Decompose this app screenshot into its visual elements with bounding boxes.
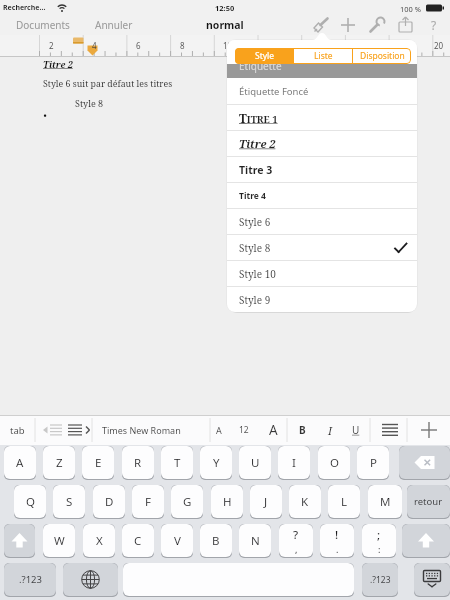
- staticText: O: [330, 455, 339, 471]
- staticText: Documents: [16, 18, 70, 32]
- staticText: 12:50: [215, 3, 235, 13]
- button[interactable]: [414, 563, 450, 596]
- button[interactable]: V: [161, 524, 193, 557]
- staticText: :: [378, 543, 381, 555]
- staticText: G: [183, 494, 192, 510]
- button[interactable]: O: [318, 446, 350, 479]
- button[interactable]: retour: [407, 485, 450, 518]
- button[interactable]: Style 9: [227, 287, 417, 312]
- button[interactable]: I: [278, 446, 310, 479]
- button[interactable]: [402, 524, 450, 557]
- button[interactable]: [407, 415, 450, 445]
- button[interactable]: B: [290, 415, 314, 445]
- staticText: Disposition: [360, 50, 405, 62]
- button[interactable]: Q: [14, 485, 46, 518]
- button[interactable]: [65, 415, 92, 445]
- staticText: Style 9: [239, 293, 271, 307]
- button[interactable]: Disposition: [353, 48, 411, 64]
- staticText: U: [352, 423, 360, 437]
- button[interactable]: [396, 15, 416, 35]
- button[interactable]: Style 10: [227, 261, 417, 286]
- staticText: Style: [255, 50, 275, 62]
- button[interactable]: [338, 15, 358, 35]
- button[interactable]: F: [132, 485, 164, 518]
- staticText: C: [134, 533, 142, 549]
- button[interactable]: B: [200, 524, 232, 557]
- staticText: S: [66, 494, 73, 510]
- staticText: Style 8: [75, 97, 104, 109]
- button[interactable]: Y: [200, 446, 232, 479]
- button[interactable]: A: [210, 415, 228, 445]
- staticText: 6: [136, 40, 141, 51]
- button[interactable]: Style 6: [227, 209, 417, 234]
- staticText: L: [341, 494, 348, 510]
- button[interactable]: Times New Roman: [92, 415, 190, 445]
- button[interactable]: S: [53, 485, 85, 518]
- button[interactable]: E: [82, 446, 114, 479]
- button[interactable]: Titre 4: [227, 183, 417, 208]
- button[interactable]: D: [93, 485, 125, 518]
- button[interactable]: [123, 563, 354, 596]
- staticText: .?123: [370, 574, 391, 586]
- staticText: 20: [434, 40, 444, 51]
- staticText: ,: [295, 543, 298, 555]
- button[interactable]: W: [43, 524, 75, 557]
- button[interactable]: P: [357, 446, 389, 479]
- button[interactable]: Z: [43, 446, 75, 479]
- button[interactable]: X: [83, 524, 115, 557]
- staticText: V: [174, 533, 181, 549]
- button[interactable]: [367, 15, 387, 35]
- staticText: tab: [10, 424, 25, 437]
- button[interactable]: TITRE 1: [227, 105, 417, 130]
- button[interactable]: J: [250, 485, 282, 518]
- button[interactable]: .?123: [4, 563, 56, 596]
- staticText: K: [301, 494, 309, 510]
- button[interactable]: T: [161, 446, 193, 479]
- staticText: Étiquette: [239, 59, 282, 73]
- staticText: Style 6: [239, 215, 271, 229]
- button[interactable]: .?123: [362, 563, 398, 596]
- button[interactable]: A: [4, 446, 36, 479]
- button[interactable]: U: [344, 415, 368, 445]
- button[interactable]: L: [328, 485, 360, 518]
- button[interactable]: ?: [424, 15, 444, 35]
- button[interactable]: tab: [0, 415, 35, 445]
- button[interactable]: H: [211, 485, 243, 518]
- button[interactable]: ?: [279, 524, 313, 557]
- button[interactable]: U: [239, 446, 271, 479]
- button[interactable]: M: [368, 485, 402, 518]
- button[interactable]: [38, 415, 65, 445]
- button[interactable]: C: [122, 524, 154, 557]
- staticText: I: [328, 423, 333, 438]
- button[interactable]: Étiquette Foncé: [227, 78, 417, 104]
- button[interactable]: [312, 15, 332, 35]
- button[interactable]: G: [171, 485, 203, 518]
- button[interactable]: I: [318, 415, 342, 445]
- button[interactable]: Style: [235, 48, 294, 64]
- button[interactable]: Liste: [294, 48, 352, 64]
- staticText: Y: [213, 455, 220, 471]
- button[interactable]: [370, 415, 407, 445]
- button[interactable]: A: [260, 415, 287, 445]
- staticText: 10: [223, 40, 233, 51]
- staticText: A: [269, 421, 278, 439]
- staticText: ?: [431, 17, 437, 33]
- staticText: W: [54, 533, 65, 549]
- button[interactable]: ;: [362, 524, 396, 557]
- button[interactable]: [399, 446, 450, 479]
- button[interactable]: Annuler: [95, 15, 145, 35]
- staticText: B: [299, 423, 306, 437]
- staticText: I: [292, 455, 296, 471]
- button[interactable]: R: [122, 446, 154, 479]
- button[interactable]: N: [239, 524, 271, 557]
- button[interactable]: Documents: [16, 15, 80, 35]
- button[interactable]: [63, 563, 118, 596]
- button[interactable]: K: [289, 485, 321, 518]
- button[interactable]: Style 8: [227, 235, 417, 260]
- staticText: B: [212, 533, 220, 549]
- staticText: H: [223, 494, 232, 510]
- button[interactable]: Titre 3: [227, 157, 417, 182]
- button[interactable]: [4, 524, 35, 557]
- button[interactable]: Titre 2: [227, 131, 417, 156]
- button[interactable]: !: [320, 524, 354, 557]
